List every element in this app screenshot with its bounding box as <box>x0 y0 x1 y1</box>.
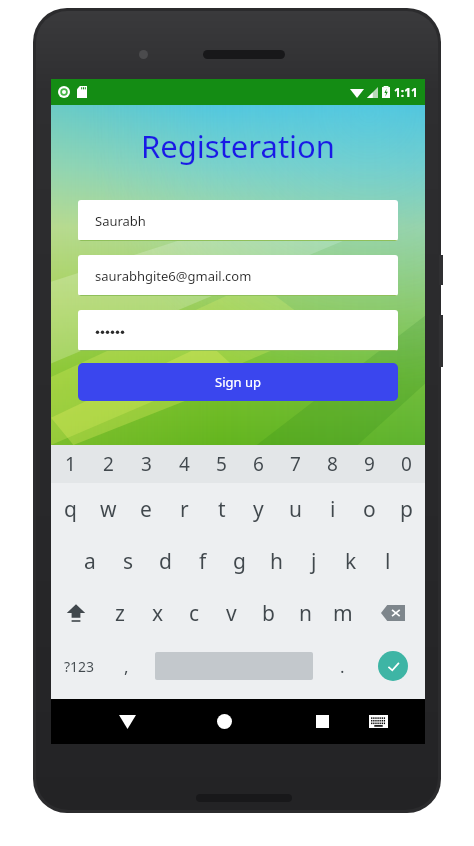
staticText: w <box>100 495 117 524</box>
staticText: s <box>123 547 134 576</box>
button[interactable]: h <box>258 535 295 587</box>
staticText: x <box>152 599 164 628</box>
staticText: j <box>311 547 317 576</box>
button[interactable]: r <box>165 483 203 535</box>
button[interactable]: , <box>108 639 144 693</box>
button[interactable]: b <box>250 587 287 639</box>
staticText: 8 <box>327 451 338 477</box>
button[interactable]: l <box>369 535 406 587</box>
button[interactable]: Home <box>200 699 249 744</box>
button[interactable]: w <box>89 483 127 535</box>
staticText: saurabhgite6@gmail.com <box>95 267 252 285</box>
staticText: Sign up <box>215 373 261 391</box>
button[interactable]: u <box>277 483 314 535</box>
staticText: b <box>262 599 275 628</box>
button[interactable]: j <box>295 535 332 587</box>
staticText: 0 <box>401 451 412 477</box>
button[interactable]: 1 <box>51 445 89 483</box>
button[interactable]: p <box>388 483 425 535</box>
button[interactable]: s <box>109 535 147 587</box>
button[interactable]: . <box>324 639 360 693</box>
staticText: r <box>180 495 189 524</box>
staticText: 4 <box>179 451 190 477</box>
button[interactable]: 8 <box>314 445 351 483</box>
button[interactable]: n <box>287 587 324 639</box>
button[interactable]: Backspace <box>361 587 425 639</box>
button[interactable]: Sign up <box>78 363 398 401</box>
button[interactable]: 2 <box>89 445 127 483</box>
button[interactable]: Enter <box>360 639 425 693</box>
staticText: m <box>333 599 353 628</box>
staticText: g <box>233 547 246 576</box>
button[interactable]: k <box>332 535 369 587</box>
staticText: ?123 <box>64 657 95 676</box>
button[interactable]: 4 <box>165 445 203 483</box>
button[interactable]: v <box>213 587 250 639</box>
staticText: d <box>159 547 172 576</box>
button[interactable]: 9 <box>351 445 388 483</box>
staticText: 1:11 <box>394 84 418 100</box>
staticText: l <box>385 547 391 576</box>
button[interactable]: e <box>127 483 165 535</box>
button[interactable]: c <box>176 587 213 639</box>
button[interactable]: g <box>221 535 258 587</box>
button[interactable] <box>78 310 398 351</box>
button[interactable]: Switch keyboard <box>354 699 403 744</box>
button[interactable]: Space <box>144 652 324 680</box>
button[interactable]: f <box>184 535 221 587</box>
staticText: t <box>218 495 226 524</box>
staticText: . <box>340 655 345 678</box>
button[interactable]: t <box>203 483 240 535</box>
staticText: 9 <box>364 451 375 477</box>
button[interactable]: 3 <box>127 445 165 483</box>
staticText: , <box>124 655 129 678</box>
button[interactable]: Back <box>103 699 151 744</box>
button[interactable]: o <box>351 483 388 535</box>
button[interactable]: Shift <box>51 587 101 639</box>
button[interactable]: Saurabh <box>78 200 398 241</box>
staticText: 6 <box>253 451 264 477</box>
staticText: u <box>289 495 302 524</box>
staticText: 3 <box>141 451 152 477</box>
button[interactable]: q <box>51 483 89 535</box>
staticText: c <box>189 599 200 628</box>
button[interactable]: z <box>101 587 139 639</box>
staticText: 2 <box>103 451 114 477</box>
button[interactable]: 7 <box>277 445 314 483</box>
staticText: e <box>140 495 152 524</box>
button[interactable]: i <box>314 483 351 535</box>
staticText: o <box>363 495 376 524</box>
staticText: i <box>330 495 336 524</box>
button[interactable]: Recent apps <box>298 699 347 744</box>
staticText: y <box>253 495 264 524</box>
button[interactable]: a <box>71 535 109 587</box>
staticText: h <box>270 547 283 576</box>
button[interactable]: m <box>324 587 361 639</box>
button[interactable]: y <box>240 483 277 535</box>
button[interactable]: 6 <box>240 445 277 483</box>
staticText: n <box>299 599 312 628</box>
staticText: f <box>199 547 207 576</box>
staticText: a <box>84 547 96 576</box>
staticText: Saurabh <box>95 212 146 230</box>
staticText: 1 <box>65 451 76 477</box>
staticText: z <box>115 599 125 628</box>
staticText: k <box>345 547 357 576</box>
staticText: p <box>400 495 413 524</box>
button[interactable]: d <box>147 535 184 587</box>
staticText: 7 <box>290 451 301 477</box>
button[interactable]: ?123 <box>51 639 108 693</box>
staticText: q <box>64 495 77 524</box>
staticText: v <box>226 599 237 628</box>
button[interactable]: x <box>139 587 176 639</box>
staticText: 5 <box>216 451 227 477</box>
staticText: Registeration <box>51 125 425 167</box>
button[interactable]: saurabhgite6@gmail.com <box>78 255 398 296</box>
button[interactable]: 5 <box>203 445 240 483</box>
button[interactable]: 0 <box>388 445 425 483</box>
